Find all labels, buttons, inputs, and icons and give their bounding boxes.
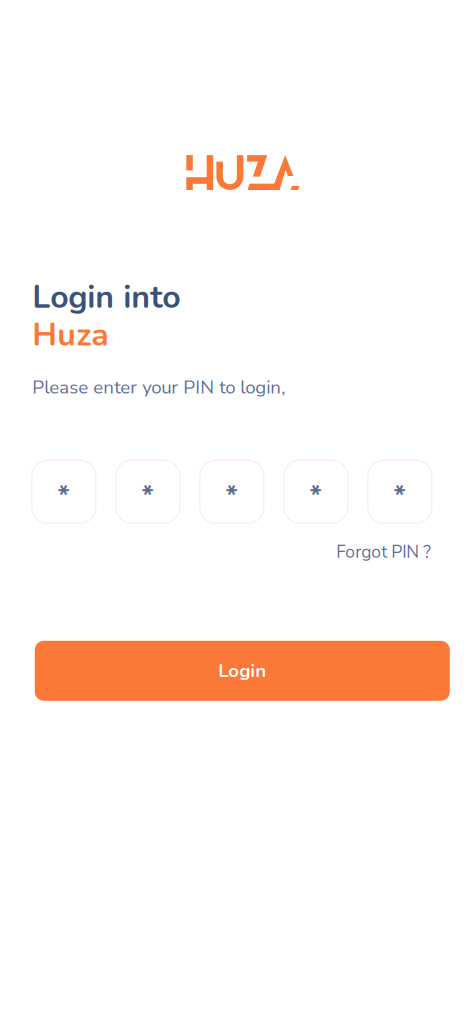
staticText: *: [393, 477, 406, 515]
staticText: Forgot PIN ?: [336, 540, 431, 564]
staticText: *: [309, 477, 322, 515]
button[interactable]: PIN digit: [116, 460, 180, 523]
button[interactable]: Login: [35, 641, 450, 701]
staticText: Login into: [32, 275, 180, 319]
button[interactable]: PIN digit: [32, 460, 96, 523]
staticText: Login: [218, 658, 266, 684]
staticText: Please enter your PIN to login,: [32, 375, 285, 400]
staticText: *: [225, 477, 238, 515]
staticText: Huza: [32, 313, 109, 357]
button[interactable]: PIN digit: [368, 460, 432, 523]
staticText: *: [57, 477, 70, 515]
staticText: *: [141, 477, 154, 515]
button[interactable]: PIN digit: [200, 460, 264, 523]
button[interactable]: PIN digit: [284, 460, 348, 523]
button[interactable]: Forgot PIN ?: [336, 540, 431, 564]
